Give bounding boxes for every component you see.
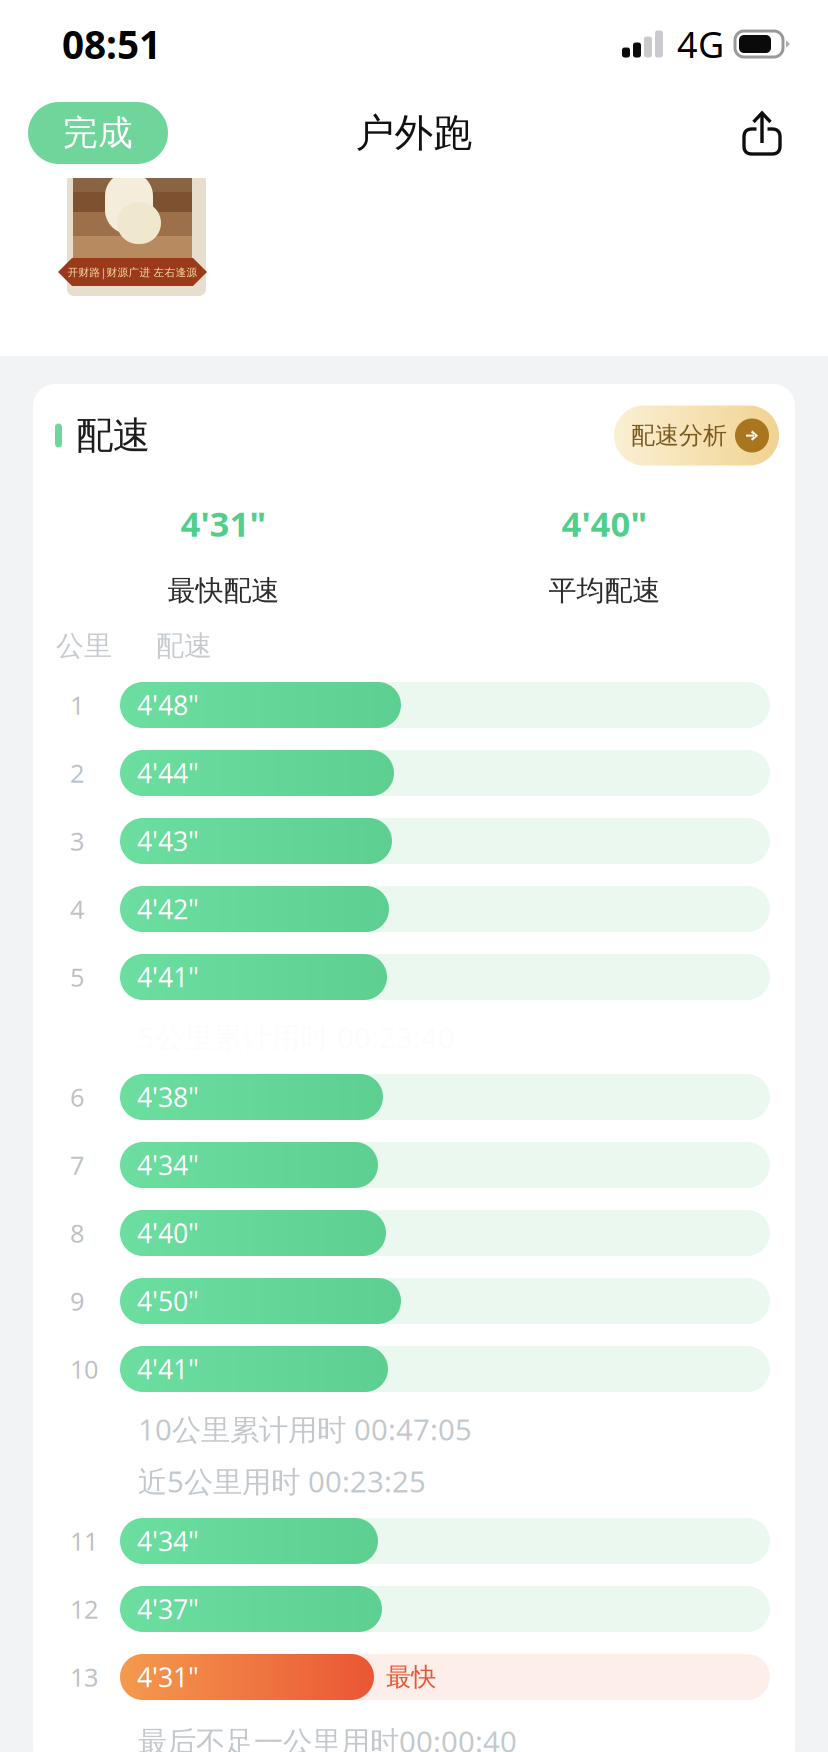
staticText: 6 [70, 1080, 84, 1114]
staticText: 9 [70, 1284, 84, 1318]
staticText: 4'31" [137, 1659, 199, 1695]
staticText: 4'48" [137, 687, 199, 723]
staticText: 户外跑 [355, 109, 472, 157]
staticText: 4'42" [137, 891, 199, 927]
staticText: 4 [70, 892, 84, 926]
staticText: 完成 [63, 111, 133, 155]
staticText: 4'50" [137, 1283, 199, 1319]
staticText: 4'38" [137, 1079, 199, 1115]
staticText: 4'40" [137, 1215, 199, 1251]
staticText: 4G [677, 19, 724, 68]
staticText: 1 [70, 688, 84, 722]
staticText: 平均配速 [548, 573, 660, 608]
staticText: 4'44" [137, 755, 199, 791]
staticText: 公里 [56, 628, 112, 664]
staticText: 10公里累计用时 00:47:05 [138, 1409, 472, 1449]
staticText: 12 [70, 1592, 98, 1626]
staticText: 最快 [386, 1661, 436, 1693]
staticText: 配速 [76, 412, 150, 459]
staticText: 最后不足一公里用时00:00:40 [138, 1721, 517, 1752]
staticText: 4'41" [137, 959, 199, 995]
staticText: 10 [70, 1352, 98, 1386]
staticText: 8 [70, 1216, 84, 1250]
button[interactable]: Share [732, 100, 792, 166]
staticText: 13 [70, 1660, 98, 1694]
staticText: 4'41" [137, 1351, 199, 1387]
staticText: 08:51 [62, 18, 161, 70]
staticText: 5 [70, 960, 84, 994]
staticText: 最快配速 [167, 573, 279, 608]
staticText: 4'31" [180, 500, 266, 547]
staticText: 近5公里用时 00:23:25 [138, 1461, 426, 1501]
staticText: 4'43" [137, 823, 199, 859]
button[interactable]: 配速分析 [614, 405, 779, 465]
button[interactable]: 完成 [28, 102, 168, 164]
staticText: 4'37" [137, 1591, 199, 1627]
staticText: 4'34" [137, 1523, 199, 1559]
staticText: 4'40" [561, 500, 647, 547]
staticText: 开财路|财源广进 左右逢源 [67, 265, 197, 279]
staticText: 4'34" [137, 1147, 199, 1183]
staticText: 11 [70, 1524, 98, 1558]
staticText: 配速分析 [631, 420, 727, 451]
staticText: 7 [70, 1148, 84, 1182]
staticText: 3 [70, 824, 84, 858]
staticText: 配速 [156, 628, 212, 664]
staticText: 2 [70, 756, 84, 790]
